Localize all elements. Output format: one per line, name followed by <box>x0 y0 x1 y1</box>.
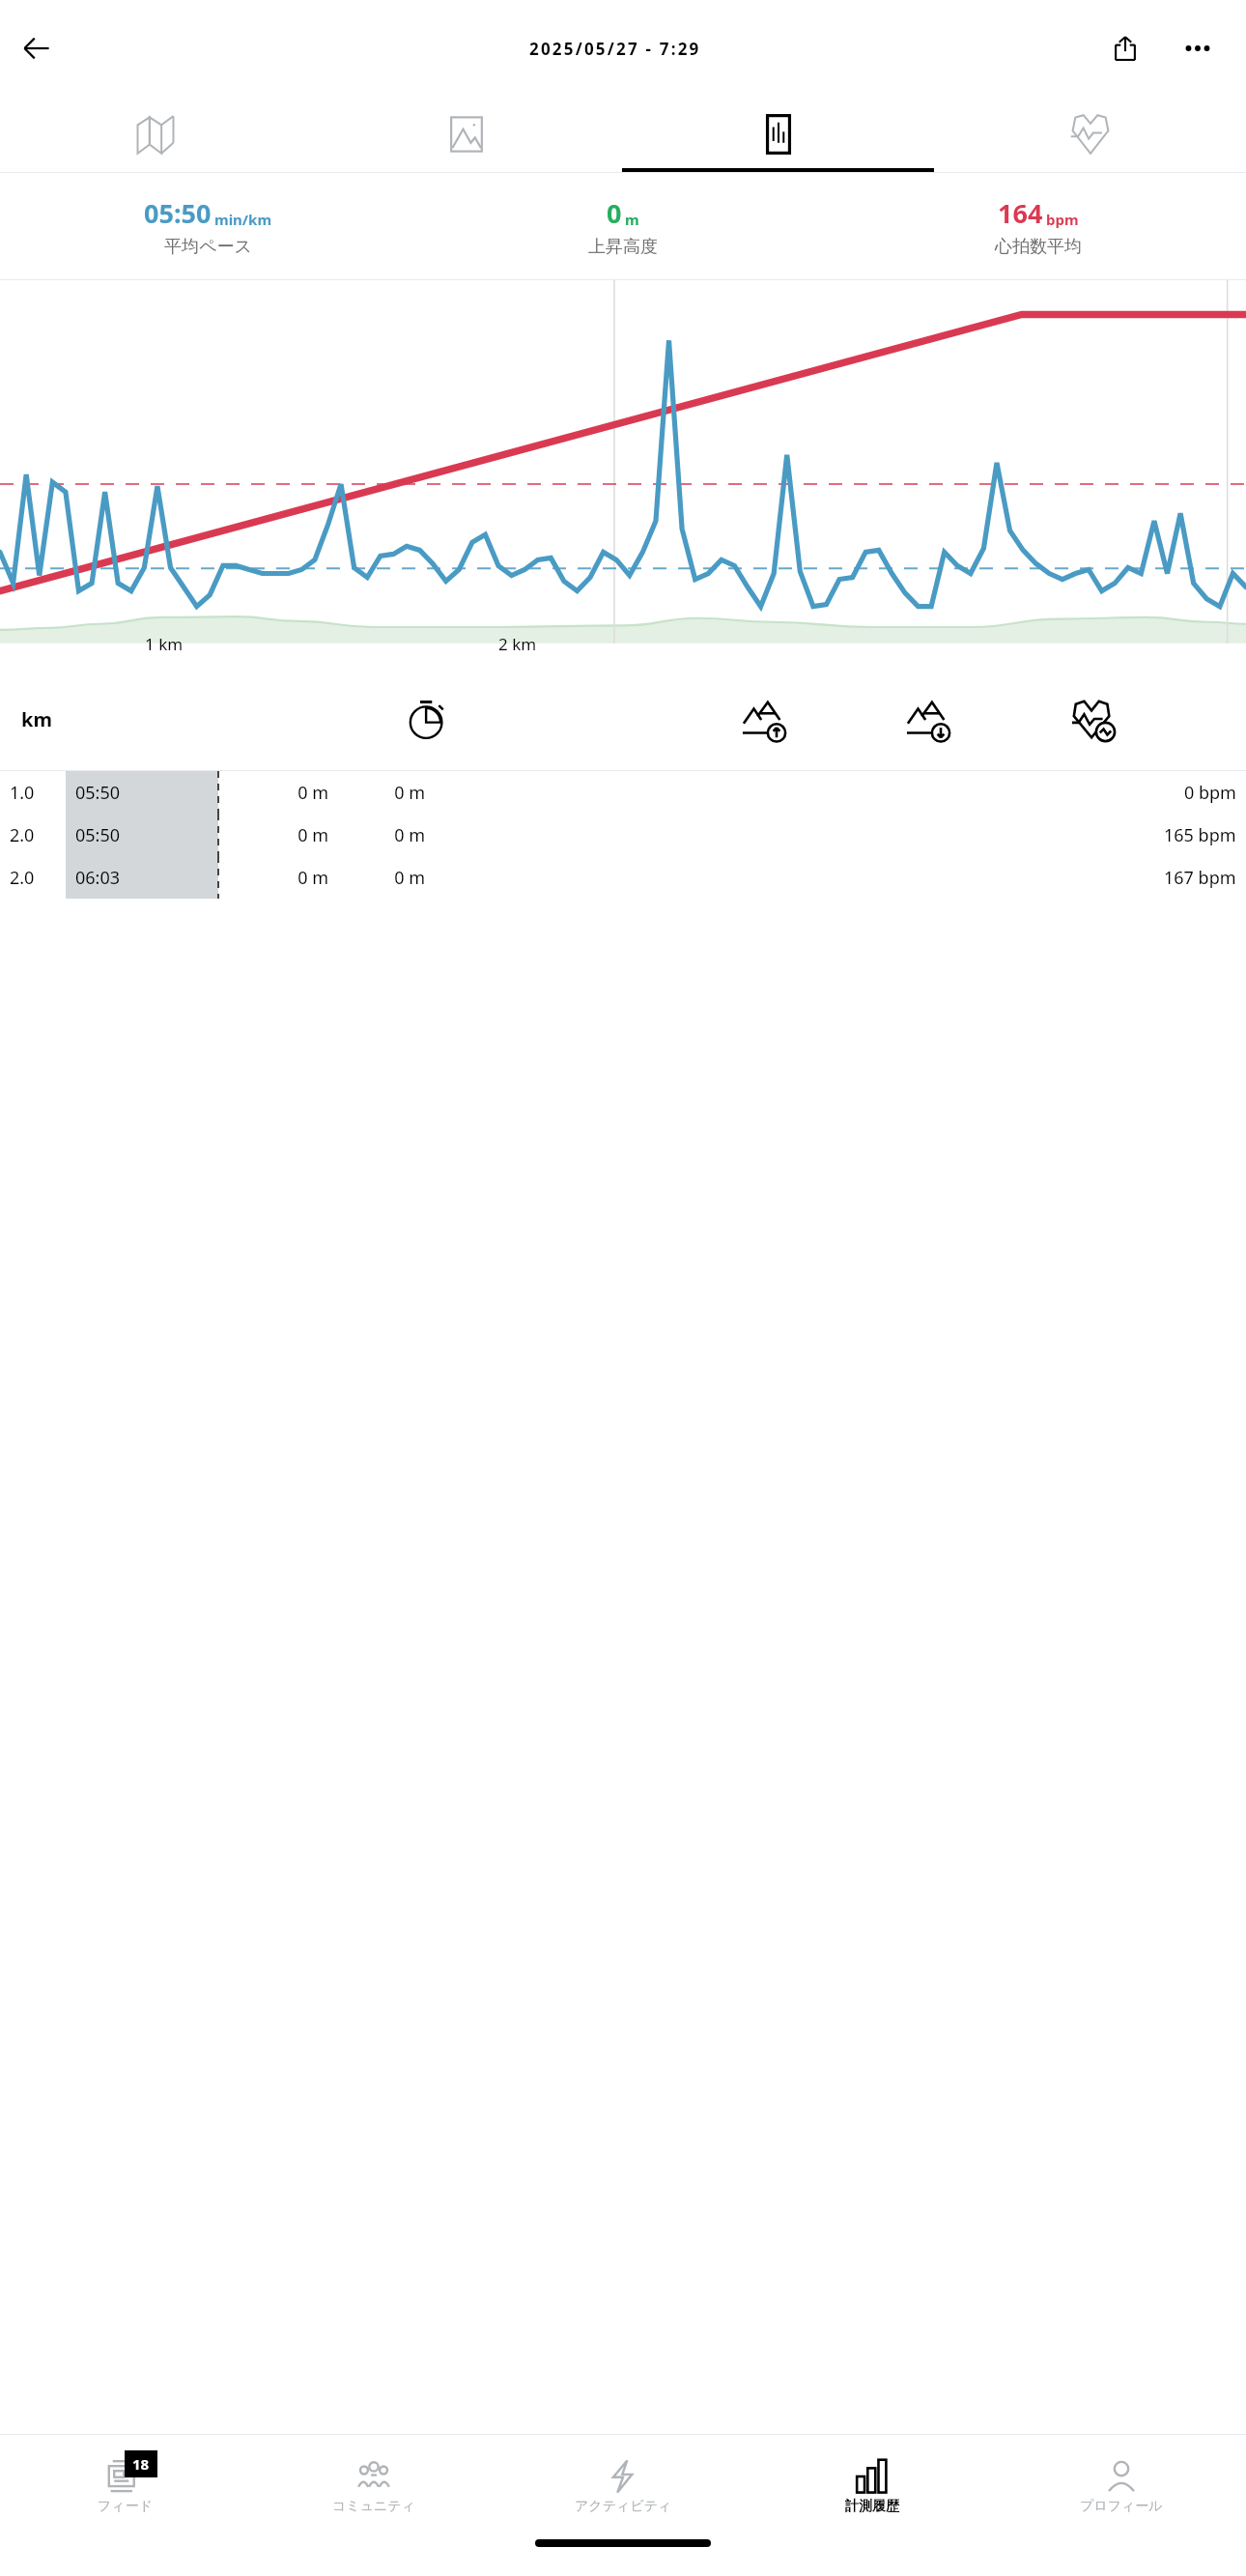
button[interactable]: Share <box>1101 24 1149 72</box>
staticText: 0 <box>607 195 622 231</box>
staticText: 05:50 <box>75 781 121 805</box>
staticText: 05:50 <box>144 195 212 231</box>
staticText: 0 m <box>241 866 328 890</box>
button[interactable]: 164 <box>831 173 1246 279</box>
button[interactable]: 18 <box>0 2435 249 2539</box>
staticText: 0 m <box>338 866 425 890</box>
staticText: 167 bpm <box>1164 866 1236 890</box>
staticText: 165 bpm <box>1164 823 1236 847</box>
staticText: 平均ペース <box>164 236 252 258</box>
button[interactable]: More options <box>1173 23 1223 73</box>
button[interactable]: プロフィール <box>997 2435 1246 2539</box>
other: Heart rate <box>1070 697 1117 743</box>
button[interactable]: 1.0 <box>0 771 1246 814</box>
button[interactable]: コミュニティ <box>249 2435 498 2539</box>
button[interactable]: 2.0 <box>0 856 1246 899</box>
staticText: 2.0 <box>10 866 35 890</box>
staticText: 2 km <box>498 633 537 655</box>
button[interactable]: Heart rate <box>934 97 1246 172</box>
button[interactable]: Elevation <box>311 97 622 172</box>
button[interactable]: Map <box>0 97 311 172</box>
button[interactable]: 計測履歴 <box>748 2435 997 2539</box>
staticText: 計測履歴 <box>845 2498 899 2515</box>
staticText: 0 bpm <box>1184 781 1236 805</box>
staticText: 0 m <box>338 781 425 805</box>
staticText: アクティビティ <box>575 2498 672 2515</box>
staticText: 05:50 <box>75 823 121 847</box>
button[interactable]: Back <box>10 21 64 75</box>
button[interactable]: Charts <box>622 97 934 172</box>
other: Ascent <box>742 697 788 743</box>
staticText: 1.0 <box>10 781 35 805</box>
button[interactable]: 1 km <box>0 280 1246 669</box>
staticText: 164 <box>998 195 1043 231</box>
button[interactable]: アクティビティ <box>498 2435 748 2539</box>
staticText: 0 m <box>241 781 328 805</box>
staticText: 2.0 <box>10 823 35 847</box>
other: Duration <box>406 699 448 741</box>
other: Descent <box>906 697 952 743</box>
staticText: km <box>21 706 52 732</box>
staticText: プロフィール <box>1080 2498 1163 2515</box>
staticText: 18 <box>132 2454 150 2474</box>
button[interactable]: 0 <box>415 173 831 279</box>
button[interactable]: 05:50 <box>0 173 415 279</box>
staticText: 1 km <box>145 633 184 655</box>
staticText: min/km <box>214 210 272 229</box>
staticText: 心拍数平均 <box>995 236 1082 258</box>
staticText: 2025/05/27 - 7:29 <box>529 38 701 60</box>
staticText: 06:03 <box>75 866 121 890</box>
staticText: bpm <box>1046 210 1079 229</box>
staticText: フィード <box>98 2498 153 2515</box>
button[interactable]: 2.0 <box>0 814 1246 856</box>
staticText: m <box>625 210 639 229</box>
staticText: 0 m <box>338 823 425 847</box>
staticText: 0 m <box>241 823 328 847</box>
staticText: 上昇高度 <box>588 236 658 258</box>
staticText: コミュニティ <box>332 2498 415 2515</box>
